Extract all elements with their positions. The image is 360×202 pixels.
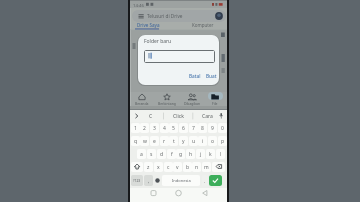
- staticText: g: [179, 151, 183, 158]
- button[interactable]: m: [202, 162, 211, 172]
- button[interactable]: [212, 162, 225, 172]
- staticText: Buat: [206, 73, 217, 79]
- button[interactable]: r: [160, 136, 169, 146]
- button[interactable]: ?123: [131, 175, 143, 186]
- staticText: Komputer: [192, 22, 214, 28]
- button[interactable]: 6: [179, 123, 188, 133]
- staticText: 7: [192, 125, 195, 132]
- staticText: v: [176, 164, 179, 171]
- button[interactable]: ,: [144, 175, 153, 186]
- button[interactable]: Telusuri di Drive: [132, 10, 226, 22]
- button[interactable]: e: [150, 136, 159, 146]
- staticText: k: [209, 151, 212, 158]
- button[interactable]: d: [157, 149, 166, 159]
- button[interactable]: g: [176, 149, 185, 159]
- button[interactable]: [209, 175, 222, 186]
- staticText: Telusuri di Drive: [147, 13, 183, 19]
- staticText: x: [157, 164, 160, 171]
- button[interactable]: Berbintang: [157, 100, 177, 106]
- staticText: Drive Saya: [137, 22, 160, 28]
- staticText: s: [150, 151, 153, 158]
- button[interactable]: l: [216, 149, 225, 159]
- button[interactable]: Indonesia: [162, 175, 200, 186]
- staticText: z: [147, 164, 150, 171]
- button[interactable]: v: [173, 162, 182, 172]
- staticText: p: [221, 138, 225, 145]
- staticText: C: [149, 113, 153, 120]
- staticText: b: [186, 164, 190, 171]
- staticText: 6: [182, 125, 185, 132]
- staticText: c: [167, 164, 170, 171]
- button[interactable]: .: [202, 175, 208, 186]
- staticText: Click: [173, 113, 184, 120]
- button[interactable]: Cara: [199, 110, 215, 122]
- staticText: w: [143, 138, 147, 145]
- button[interactable]: s: [147, 149, 156, 159]
- button[interactable]: Click: [170, 110, 187, 122]
- staticText: q: [134, 138, 138, 145]
- staticText: d: [160, 151, 164, 158]
- button[interactable]: p: [218, 136, 227, 146]
- staticText: Folder baru: [144, 38, 172, 45]
- button[interactable]: File: [208, 100, 222, 106]
- button[interactable]: h: [186, 149, 195, 159]
- button[interactable]: k: [206, 149, 215, 159]
- button[interactable]: 5: [169, 123, 178, 133]
- staticText: j: [200, 151, 202, 158]
- staticText: Berbintang: [158, 101, 176, 106]
- button[interactable]: b: [183, 162, 192, 172]
- staticText: u: [192, 138, 196, 145]
- button[interactable]: 7: [189, 123, 198, 133]
- button[interactable]: x: [154, 162, 163, 172]
- button[interactable]: Drive Saya: [134, 22, 162, 28]
- staticText: r: [163, 138, 166, 145]
- staticText: Indonesia: [172, 178, 191, 183]
- button[interactable]: q: [131, 136, 140, 146]
- button[interactable]: y: [179, 136, 188, 146]
- button[interactable]: w: [140, 136, 149, 146]
- staticText: Batal: [189, 73, 201, 79]
- button[interactable]: C: [144, 110, 158, 122]
- button[interactable]: 2: [140, 123, 149, 133]
- button[interactable]: z: [144, 162, 153, 172]
- button[interactable]: t: [169, 136, 178, 146]
- button[interactable]: [131, 162, 143, 172]
- button[interactable]: Dibagikan: [182, 100, 202, 106]
- button[interactable]: 3: [150, 123, 159, 133]
- staticText: n: [195, 164, 199, 171]
- staticText: a: [140, 151, 143, 158]
- button[interactable]: [208, 92, 223, 100]
- button[interactable]: u: [189, 136, 198, 146]
- staticText: y: [182, 138, 185, 145]
- button[interactable]: n: [192, 162, 201, 172]
- staticText: File: [212, 101, 218, 106]
- button[interactable]: o: [208, 136, 217, 146]
- staticText: 0: [221, 125, 224, 132]
- button[interactable]: j: [196, 149, 205, 159]
- button[interactable]: 1: [131, 123, 140, 133]
- staticText: Beranda: [135, 101, 149, 106]
- button[interactable]: 0: [218, 123, 227, 133]
- button[interactable]: Batal: [187, 72, 202, 80]
- button[interactable]: f: [167, 149, 176, 159]
- staticText: i: [202, 138, 204, 145]
- button[interactable]: 9: [208, 123, 217, 133]
- button[interactable]: Buat: [205, 72, 218, 80]
- staticText: 3: [153, 125, 156, 132]
- staticText: 9: [211, 125, 214, 132]
- staticText: ,: [148, 178, 150, 184]
- button[interactable]: 8: [198, 123, 207, 133]
- button[interactable]: Komputer: [192, 22, 214, 28]
- button[interactable]: Beranda: [133, 100, 151, 106]
- staticText: h: [189, 151, 193, 158]
- button[interactable]: i: [198, 136, 207, 146]
- staticText: o: [211, 138, 215, 145]
- button[interactable]: a: [137, 149, 146, 159]
- staticText: 8: [201, 125, 204, 132]
- staticText: l: [220, 151, 222, 158]
- button[interactable]: 4: [160, 123, 169, 133]
- staticText: .: [204, 178, 206, 184]
- staticText: e: [153, 138, 156, 145]
- button[interactable]: c: [164, 162, 173, 172]
- staticText: Dibagikan: [184, 101, 201, 106]
